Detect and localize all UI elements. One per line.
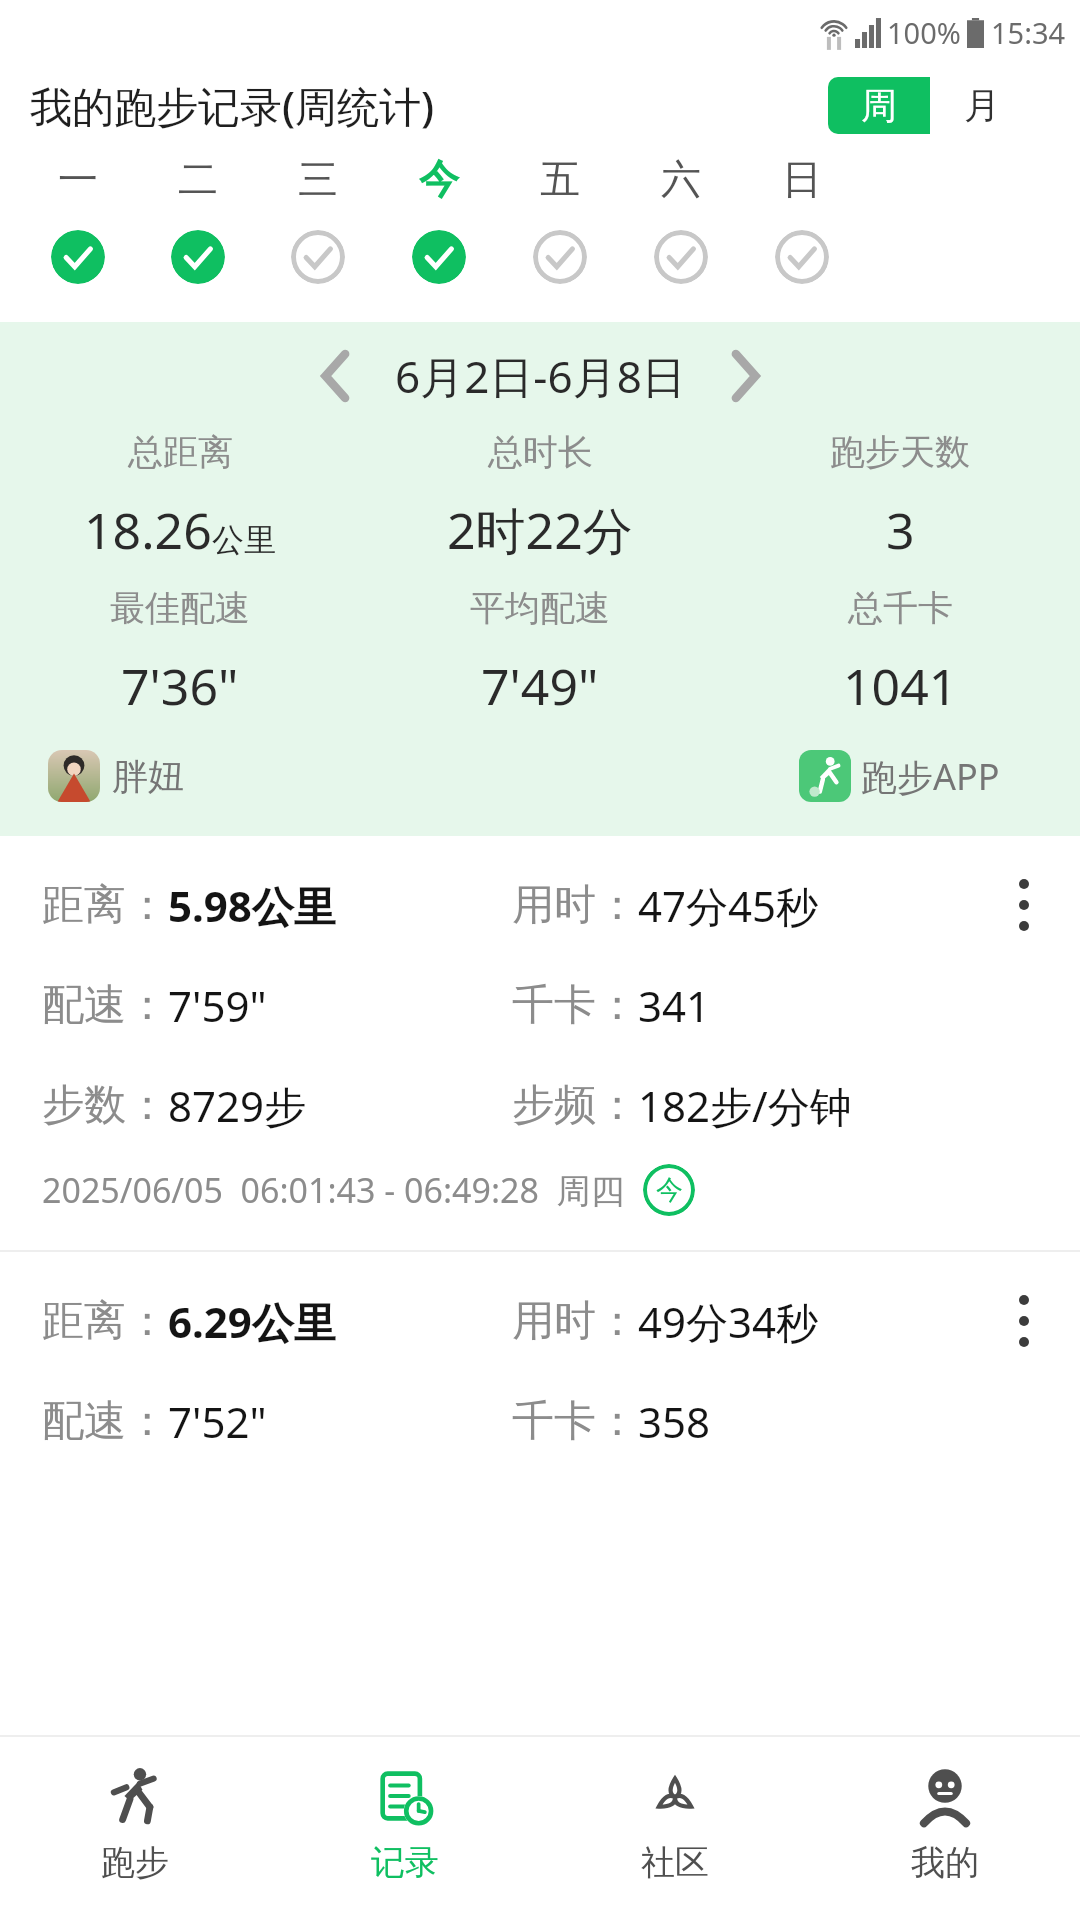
button[interactable]: 记录 <box>270 1737 540 1920</box>
staticText: 社区 <box>641 1841 709 1884</box>
button[interactable]: 月 <box>930 77 1033 134</box>
staticText: 182步/分钟 <box>638 1077 852 1134</box>
staticText: 2025/06/05 06:01:43 - 06:49:28 周四 <box>42 1167 625 1213</box>
staticText: 总距离 <box>128 430 233 474</box>
button[interactable]: 距离： <box>0 1252 1080 1460</box>
button[interactable]: 跑步APP <box>799 750 1000 802</box>
staticText: 7'49" <box>481 652 599 720</box>
staticText: 47分45秒 <box>638 877 819 934</box>
button[interactable]: Day 1 status <box>51 230 105 284</box>
staticText: 千卡： <box>512 1395 638 1448</box>
button[interactable]: 今 <box>643 1164 695 1216</box>
staticText: 最佳配速 <box>110 586 250 630</box>
staticText: 1041 <box>843 652 958 720</box>
staticText: 6月2日-6月8日 <box>395 346 686 406</box>
staticText: 100% <box>887 13 961 52</box>
button[interactable]: Day 5 status <box>533 230 587 284</box>
button[interactable]: Next week <box>708 339 782 413</box>
staticText: 今 <box>656 1173 683 1207</box>
staticText: 358 <box>638 1393 711 1450</box>
staticText: 周 <box>861 83 897 128</box>
staticText: 7'52" <box>168 1393 267 1450</box>
staticText: 8729步 <box>168 1077 307 1134</box>
staticText: 平均配速 <box>470 586 610 630</box>
staticText: 步数： <box>42 1079 168 1132</box>
staticText: 跑步APP <box>861 752 1000 801</box>
staticText: 千卡： <box>512 979 638 1032</box>
staticText: 二 <box>178 154 218 204</box>
button[interactable]: More options <box>986 867 1062 943</box>
staticText: 3 <box>886 496 915 564</box>
staticText: 7'59" <box>168 977 267 1034</box>
staticText: 用时： <box>512 1295 638 1348</box>
button[interactable]: Day 6 status <box>654 230 708 284</box>
staticText: 日 <box>782 154 822 204</box>
button[interactable]: More options <box>986 1283 1062 1359</box>
staticText: 记录 <box>371 1841 439 1884</box>
staticText: 五 <box>540 154 580 204</box>
staticText: 距离： <box>42 1295 168 1348</box>
button[interactable]: 我的 <box>810 1737 1080 1920</box>
staticText: 胖妞 <box>112 754 184 799</box>
staticText: 跑步 <box>101 1841 169 1884</box>
staticText: 三 <box>298 154 338 204</box>
staticText: 341 <box>638 977 711 1034</box>
button[interactable]: 跑步 <box>0 1737 270 1920</box>
staticText: 7'36" <box>121 652 239 720</box>
staticText: 今 <box>419 154 459 204</box>
staticText: 我的跑步记录(周统计) <box>30 77 435 134</box>
staticText: 总时长 <box>488 430 593 474</box>
button[interactable]: Day 7 status <box>775 230 829 284</box>
staticText: 用时： <box>512 879 638 932</box>
staticText: 总千卡 <box>848 586 953 630</box>
staticText: 6.29公里 <box>168 1293 336 1350</box>
staticText: 步频： <box>512 1079 638 1132</box>
staticText: 我的 <box>911 1841 979 1884</box>
staticText: 月 <box>964 83 1000 128</box>
staticText: 六 <box>661 154 701 204</box>
button[interactable]: Day 2 status <box>171 230 225 284</box>
staticText: 跑步天数 <box>830 430 970 474</box>
staticText: 距离： <box>42 879 168 932</box>
staticText: 2时22分 <box>447 496 633 564</box>
staticText: 18.26 <box>84 496 212 564</box>
button[interactable]: 社区 <box>540 1737 810 1920</box>
button[interactable]: 距离： <box>0 836 1080 1250</box>
staticText: 配速： <box>42 1395 168 1448</box>
staticText: 5.98公里 <box>168 877 336 934</box>
button[interactable]: Day 3 status <box>291 230 345 284</box>
button[interactable]: Day 4 status <box>412 230 466 284</box>
button[interactable]: Previous week <box>299 339 373 413</box>
staticText: 49分34秒 <box>638 1293 819 1350</box>
staticText: 15:34 <box>991 13 1066 52</box>
staticText: 配速： <box>42 979 168 1032</box>
button[interactable]: 胖妞 <box>48 750 184 802</box>
staticText: 一 <box>58 154 98 204</box>
button[interactable]: 周 <box>828 77 930 134</box>
staticText: 公里 <box>212 520 276 560</box>
